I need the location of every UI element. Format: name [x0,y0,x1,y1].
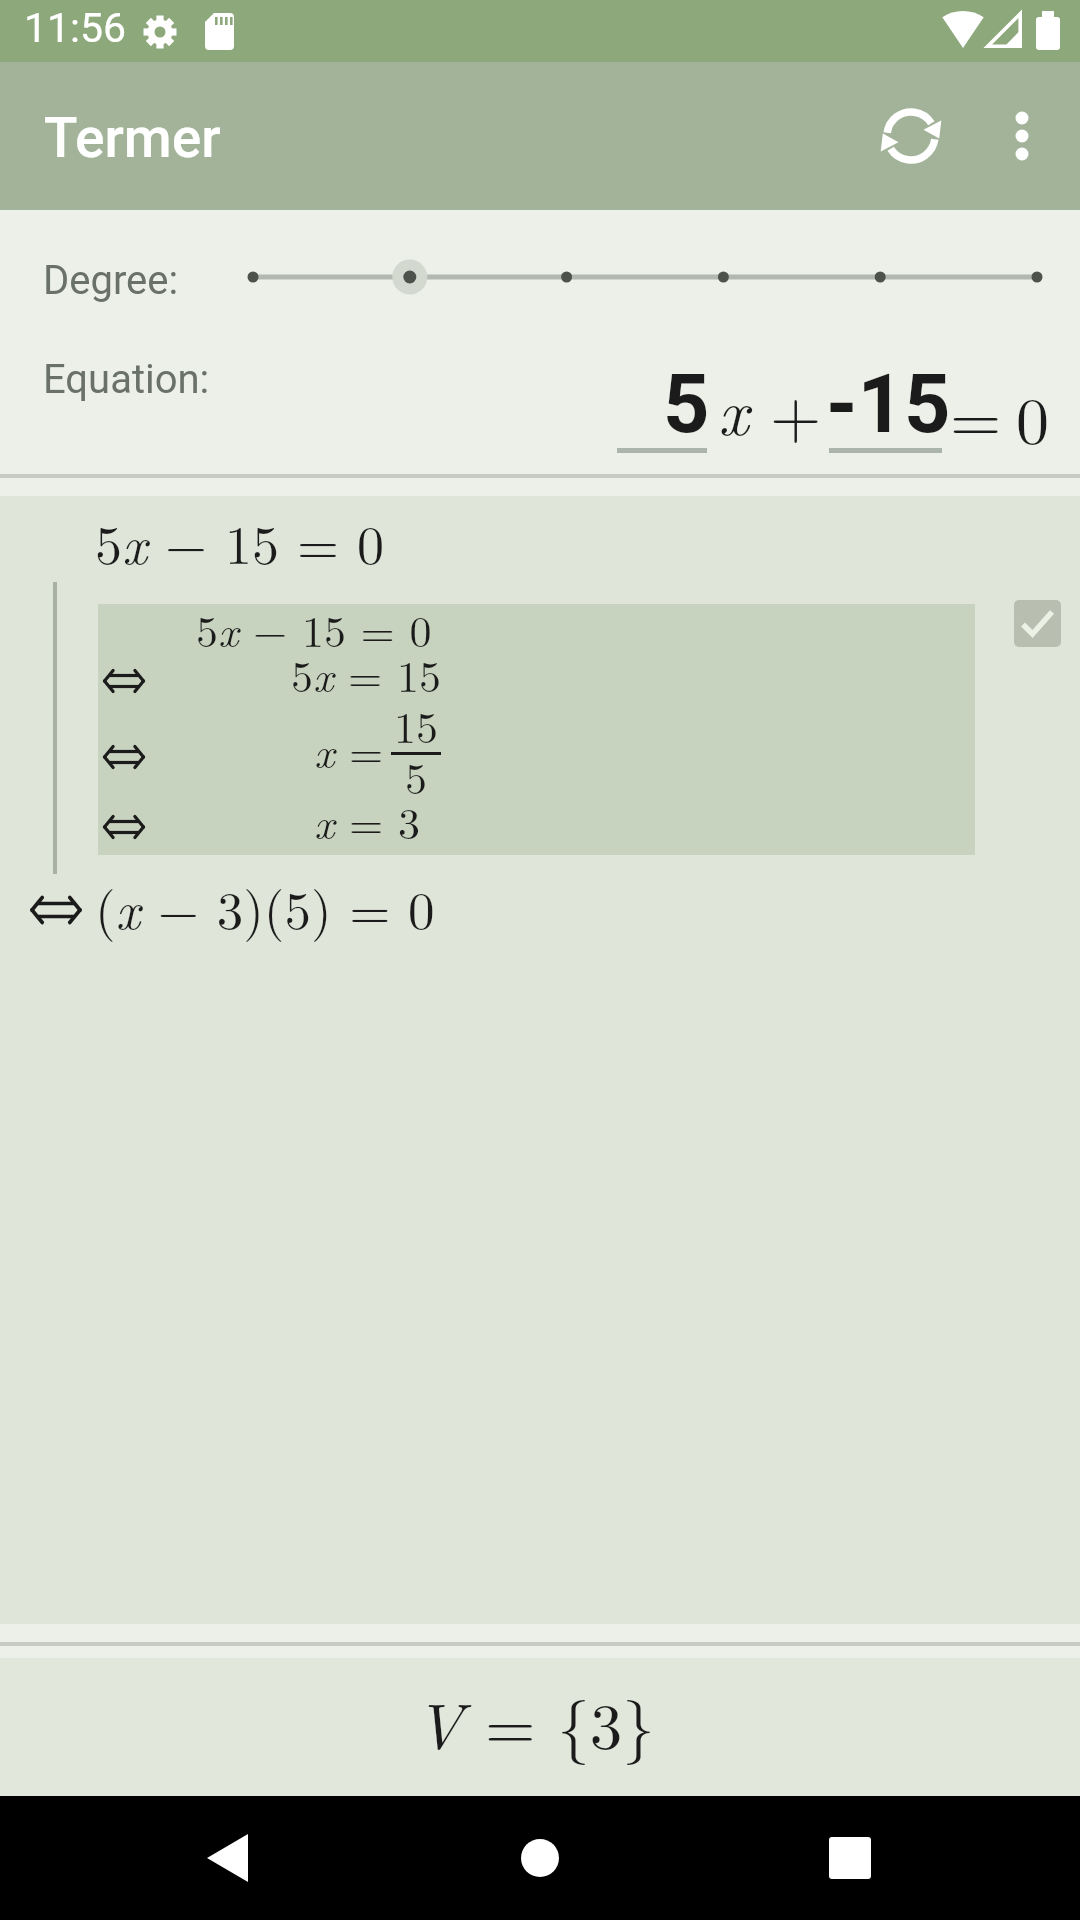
staticText: 5 [663,357,710,452]
staticText: = [950,368,1002,462]
staticText: 5x − 15 = 0 [196,597,432,659]
staticText: x = 3 [314,789,420,851]
button[interactable] [462,1800,618,1916]
button[interactable] [150,1800,306,1916]
staticText: 5 [405,744,427,806]
staticText: 5x = 15 [291,642,441,704]
button[interactable] [617,350,707,450]
staticText: Equation: [43,356,210,403]
staticText: 15 [394,693,438,755]
button[interactable] [230,240,1060,315]
button[interactable] [98,604,975,855]
staticText: 5x − 15 = 0 [95,503,385,580]
button[interactable] [829,350,942,450]
staticText: -15 [826,357,951,452]
button[interactable] [772,1800,928,1916]
staticText: (x − 3)(5) = 0 [95,869,435,944]
staticText: x [718,361,749,454]
staticText: + [770,364,822,458]
button[interactable] [997,102,1047,170]
staticText: Degree: [43,257,179,304]
button[interactable] [877,102,945,170]
staticText: Termer [44,106,221,170]
staticText: V = {3} [415,1676,655,1768]
staticText: 0 [1016,370,1049,464]
staticText: x = [314,718,384,780]
button[interactable] [1014,600,1061,647]
staticText: 11:56 [24,4,127,52]
